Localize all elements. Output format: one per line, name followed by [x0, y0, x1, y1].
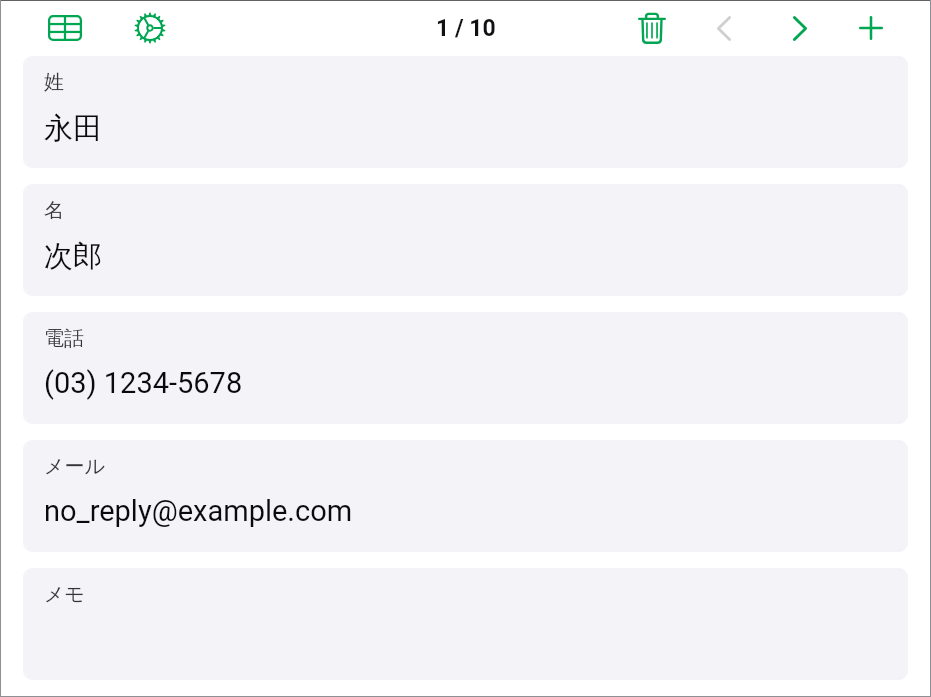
- button[interactable]: Table: [41, 4, 89, 52]
- staticText: (03) 1234-5678: [44, 366, 243, 400]
- button[interactable]: Delete: [628, 4, 676, 52]
- button[interactable]: 姓: [23, 56, 908, 168]
- staticText: メール: [44, 454, 105, 479]
- staticText: no_reply@example.com: [44, 494, 353, 528]
- button[interactable]: Settings: [126, 4, 174, 52]
- staticText: 名: [44, 198, 64, 223]
- staticText: 電話: [44, 326, 84, 351]
- button[interactable]: メモ: [23, 568, 908, 680]
- staticText: 永田: [44, 110, 102, 147]
- button[interactable]: 名: [23, 184, 908, 296]
- button[interactable]: メール: [23, 440, 908, 552]
- button[interactable]: Add: [847, 4, 895, 52]
- staticText: メモ: [44, 582, 85, 607]
- button[interactable]: Previous: [700, 4, 748, 52]
- button[interactable]: Next: [776, 4, 824, 52]
- button[interactable]: 電話: [23, 312, 908, 424]
- staticText: 1 / 10: [436, 15, 496, 42]
- staticText: 姓: [44, 70, 64, 95]
- staticText: 次郎: [44, 238, 102, 275]
